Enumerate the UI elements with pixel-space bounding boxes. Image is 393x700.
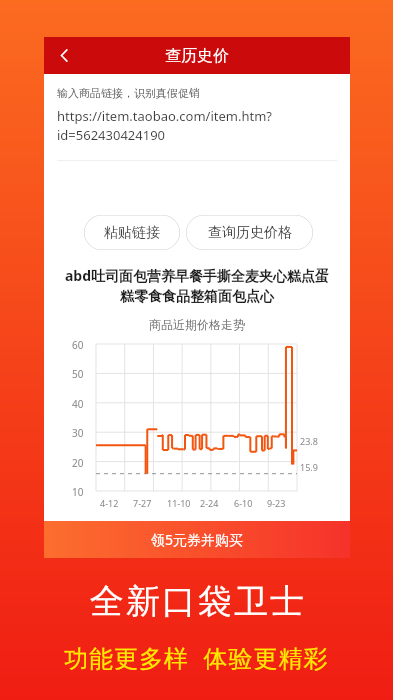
staticText: 粘贴链接	[104, 224, 160, 242]
staticText: 功能更多样 体验更精彩	[64, 641, 329, 674]
staticText: 30	[72, 426, 84, 440]
staticText: 查历史价	[165, 46, 229, 66]
staticText: 40	[72, 397, 84, 411]
staticText: 20	[72, 456, 84, 470]
staticText: abd吐司面包营养早餐手撕全麦夹心糕点蛋糕零食食品整箱面包点心	[60, 266, 334, 305]
staticText: 10	[72, 485, 84, 499]
staticText: 输入商品链接，识别真假促销	[57, 86, 200, 100]
staticText: 23.8	[300, 435, 318, 447]
staticText: 11-10	[167, 497, 191, 509]
staticText: 全新口袋卫士	[89, 580, 305, 623]
staticText: 60	[72, 338, 84, 352]
button[interactable]: 查询历史价格	[186, 215, 313, 250]
staticText: https://item.taobao.com/item.htm?id=5624…	[57, 107, 341, 144]
staticText: 领5元券并购买	[151, 530, 244, 549]
staticText: 查询历史价格	[208, 224, 292, 242]
staticText: 商品近期价格走势	[44, 317, 350, 332]
button[interactable]: 领5元券并购买	[44, 521, 350, 558]
button[interactable]: Back	[44, 37, 84, 74]
staticText: 4-12	[100, 497, 119, 509]
staticText: 2-24	[200, 497, 219, 509]
staticText: 15.9	[300, 461, 318, 473]
staticText: 9-23	[267, 497, 286, 509]
staticText: 6-10	[234, 497, 253, 509]
staticText: 50	[72, 367, 84, 381]
button[interactable]: 粘贴链接	[84, 215, 180, 250]
staticText: 7-27	[133, 497, 152, 509]
